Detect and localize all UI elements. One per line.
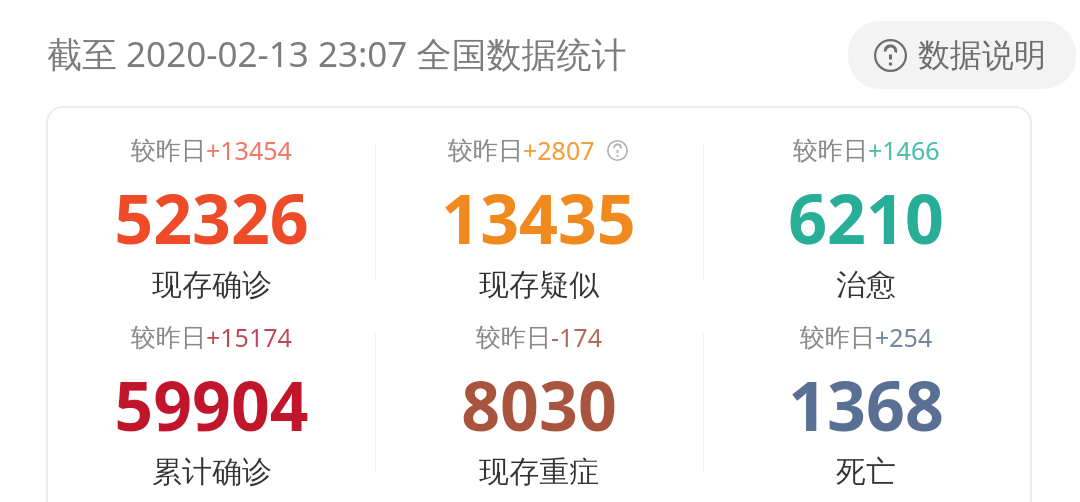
staticText: 8030: [461, 358, 617, 451]
staticText: +13454: [206, 133, 292, 167]
staticText: 较昨日: [448, 135, 523, 166]
button[interactable]: 较昨日: [375, 133, 702, 304]
staticText: +2807: [523, 133, 595, 167]
staticText: 现存疑似: [479, 266, 599, 304]
staticText: 死亡: [836, 453, 896, 491]
button[interactable]: 较昨日: [48, 133, 375, 304]
staticText: 较昨日: [131, 322, 206, 353]
staticText: 较昨日: [800, 322, 875, 353]
staticText: 累计确诊: [152, 453, 272, 491]
staticText: 现存重症: [479, 453, 599, 491]
staticText: +15174: [206, 320, 292, 354]
staticText: 1368: [788, 358, 944, 451]
button[interactable]: 数据说明: [605, 138, 629, 162]
staticText: 数据说明: [918, 35, 1046, 75]
button[interactable]: 较昨日: [702, 320, 1030, 491]
button[interactable]: 较昨日: [702, 133, 1030, 304]
button[interactable]: 较昨日: [48, 320, 375, 491]
staticText: +1466: [868, 133, 940, 167]
staticText: 较昨日: [793, 135, 868, 166]
staticText: 52326: [114, 171, 309, 264]
staticText: 治愈: [836, 266, 896, 304]
staticText: 较昨日: [131, 135, 206, 166]
button[interactable]: 数据说明: [848, 21, 1076, 89]
staticText: 现存确诊: [152, 266, 272, 304]
button[interactable]: 较昨日: [375, 320, 702, 491]
staticText: 6210: [788, 171, 944, 264]
staticText: 截至 2020-02-13 23:07 全国数据统计: [47, 30, 627, 78]
staticText: 59904: [114, 358, 309, 451]
staticText: +254: [875, 320, 933, 354]
staticText: 13435: [441, 171, 636, 264]
staticText: 较昨日: [476, 322, 551, 353]
staticText: -174: [551, 320, 602, 354]
